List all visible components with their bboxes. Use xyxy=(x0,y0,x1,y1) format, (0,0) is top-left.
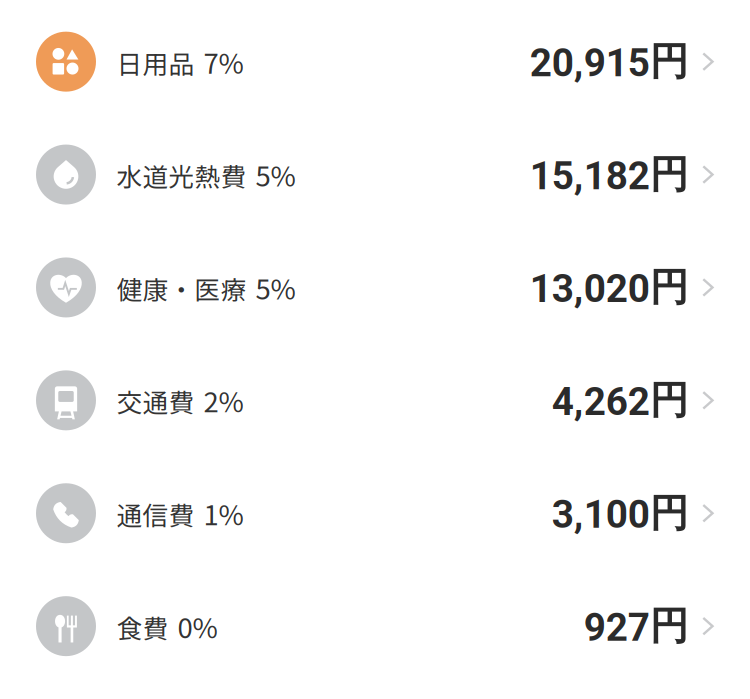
staticText: 3,100円 xyxy=(552,489,689,538)
staticText: 日用品 xyxy=(116,44,194,81)
button[interactable]: 通信費 xyxy=(0,457,750,570)
staticText: 15,182円 xyxy=(530,150,689,199)
staticText: 13,020円 xyxy=(530,263,689,312)
staticText: 健康・医療 xyxy=(116,270,246,307)
staticText: 4,262円 xyxy=(552,376,689,425)
button[interactable]: 食費 xyxy=(0,570,750,683)
staticText: 1% xyxy=(203,493,243,533)
button[interactable]: 健康・医療 xyxy=(0,231,750,344)
button[interactable]: 水道光熱費 xyxy=(0,118,750,231)
staticText: 通信費 xyxy=(116,495,194,533)
staticText: 5% xyxy=(255,155,295,194)
button[interactable]: 日用品 xyxy=(0,5,750,118)
staticText: 水道光熱費 xyxy=(116,157,246,194)
staticText: 交通費 xyxy=(116,383,194,420)
button[interactable]: 交通費 xyxy=(0,344,750,457)
staticText: 7% xyxy=(203,42,243,82)
staticText: 0% xyxy=(177,606,217,646)
staticText: 927円 xyxy=(584,602,689,650)
staticText: 食費 xyxy=(116,608,168,645)
staticText: 2% xyxy=(203,380,243,420)
staticText: 20,915円 xyxy=(530,37,689,86)
staticText: 5% xyxy=(255,268,295,307)
